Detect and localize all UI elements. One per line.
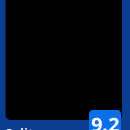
staticText: Solitary: [5, 124, 54, 130]
staticText: 9.2: [91, 111, 119, 130]
button[interactable]: Open title: [5, 0, 122, 120]
